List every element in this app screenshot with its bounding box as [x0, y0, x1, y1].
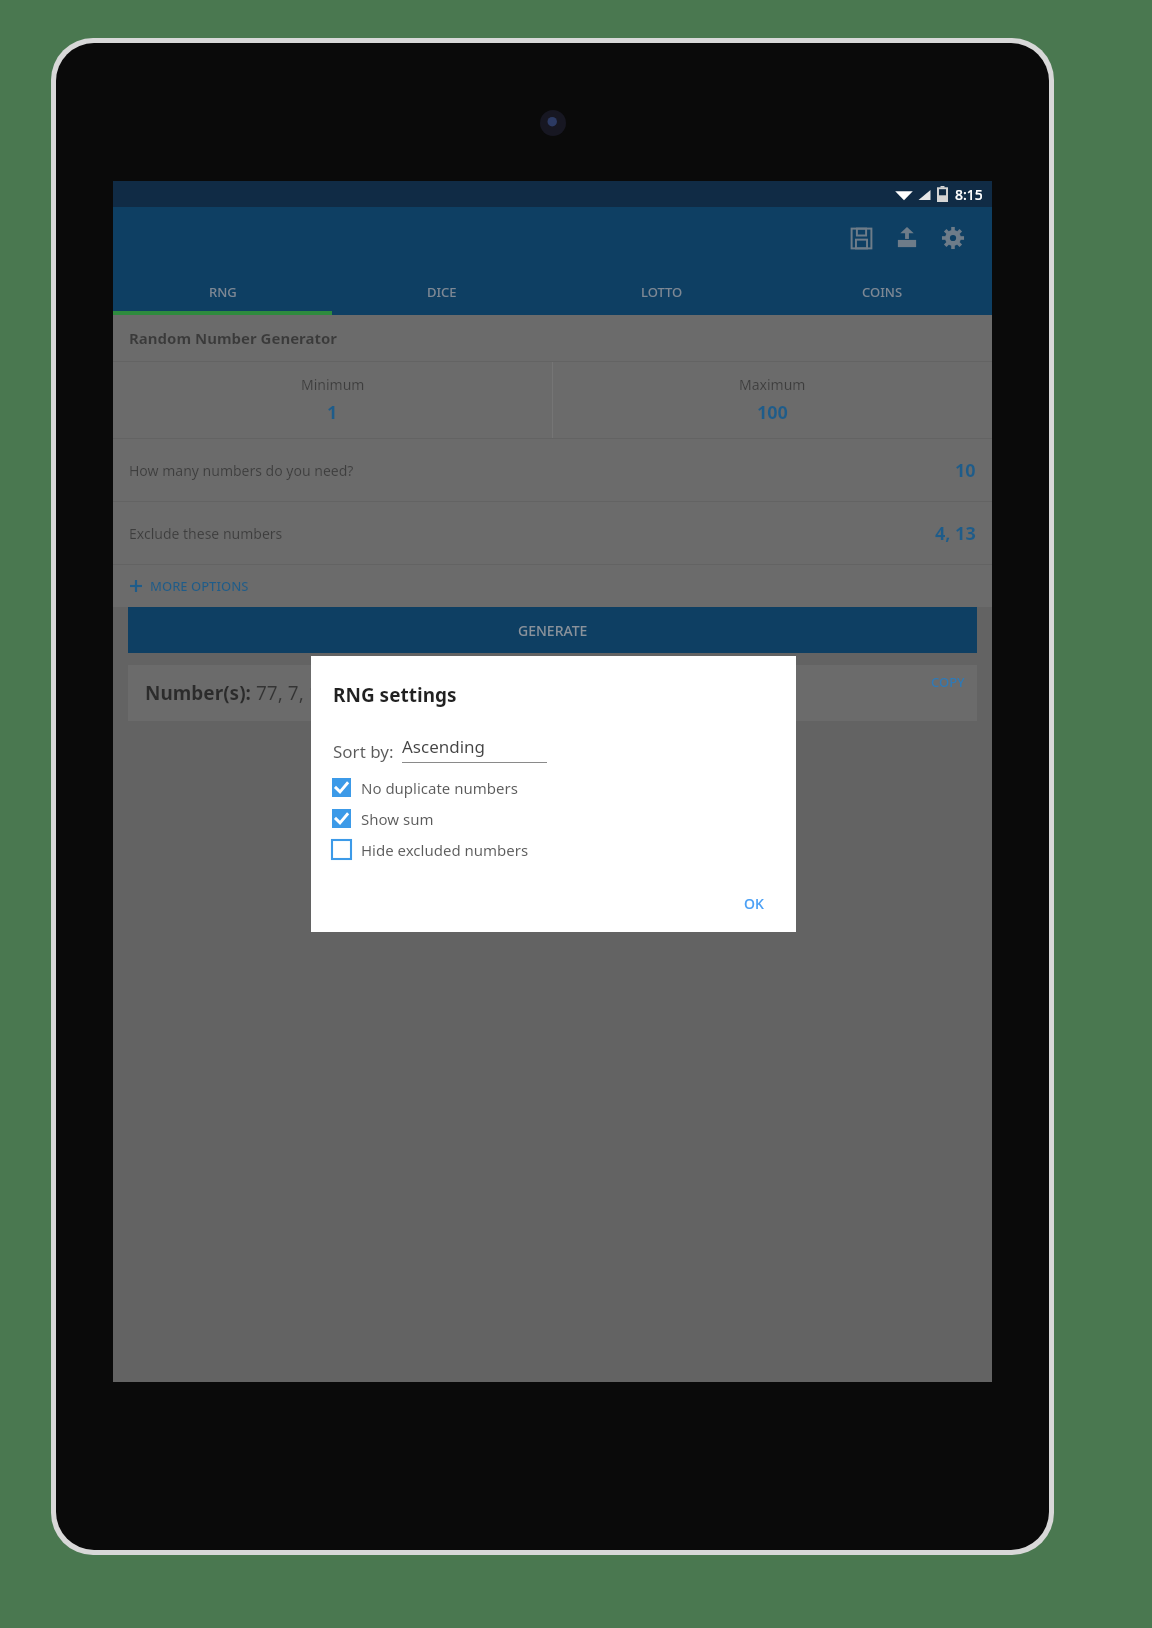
- staticText: Show sum: [361, 809, 434, 829]
- button[interactable]: Save: [838, 215, 884, 261]
- button[interactable]: COINS: [772, 269, 992, 315]
- staticText: Sort by:: [333, 740, 394, 763]
- button[interactable]: Settings: [930, 215, 976, 261]
- staticText: GENERATE: [518, 621, 588, 640]
- button[interactable]: RNG: [113, 269, 332, 315]
- staticText: Exclude these numbers: [129, 524, 283, 543]
- staticText: How many numbers do you need?: [129, 461, 354, 480]
- button[interactable]: Hide excluded numbers: [311, 834, 796, 865]
- button[interactable]: GENERATE: [128, 607, 977, 653]
- staticText: Random Number Generator: [129, 328, 338, 348]
- button[interactable]: Exclude these numbers: [113, 502, 992, 564]
- staticText: 1: [327, 400, 338, 425]
- staticText: Maximum: [739, 375, 806, 394]
- staticText: DICE: [427, 283, 457, 301]
- staticText: 77, 7, 1: [256, 680, 320, 706]
- button[interactable]: Load: [884, 215, 930, 261]
- staticText: Minimum: [301, 375, 365, 394]
- staticText: Ascending: [402, 735, 486, 758]
- button[interactable]: MORE OPTIONS: [113, 565, 992, 607]
- staticText: LOTTO: [641, 283, 683, 301]
- staticText: MORE OPTIONS: [150, 577, 249, 595]
- staticText: Hide excluded numbers: [361, 840, 529, 860]
- staticText: 8:15: [955, 185, 983, 204]
- button[interactable]: Maximum: [553, 362, 992, 438]
- staticText: 100: [757, 400, 788, 425]
- button[interactable]: COPY: [931, 673, 965, 691]
- staticText: 4, 13: [935, 521, 976, 546]
- button[interactable]: OK: [734, 889, 774, 918]
- staticText: COINS: [862, 283, 903, 301]
- staticText: RNG: [209, 283, 237, 301]
- staticText: RNG settings: [333, 682, 457, 708]
- button[interactable]: Show sum: [311, 803, 796, 834]
- button[interactable]: LOTTO: [552, 269, 772, 315]
- staticText: 10: [955, 458, 976, 483]
- button[interactable]: DICE: [332, 269, 552, 315]
- staticText: COPY: [931, 673, 965, 691]
- button[interactable]: Ascending: [402, 735, 547, 763]
- staticText: Number(s):: [145, 680, 256, 706]
- button[interactable]: No duplicate numbers: [311, 772, 796, 803]
- staticText: No duplicate numbers: [361, 778, 518, 798]
- button[interactable]: Minimum: [113, 362, 552, 438]
- button[interactable]: How many numbers do you need?: [113, 439, 992, 501]
- staticText: OK: [744, 894, 764, 913]
